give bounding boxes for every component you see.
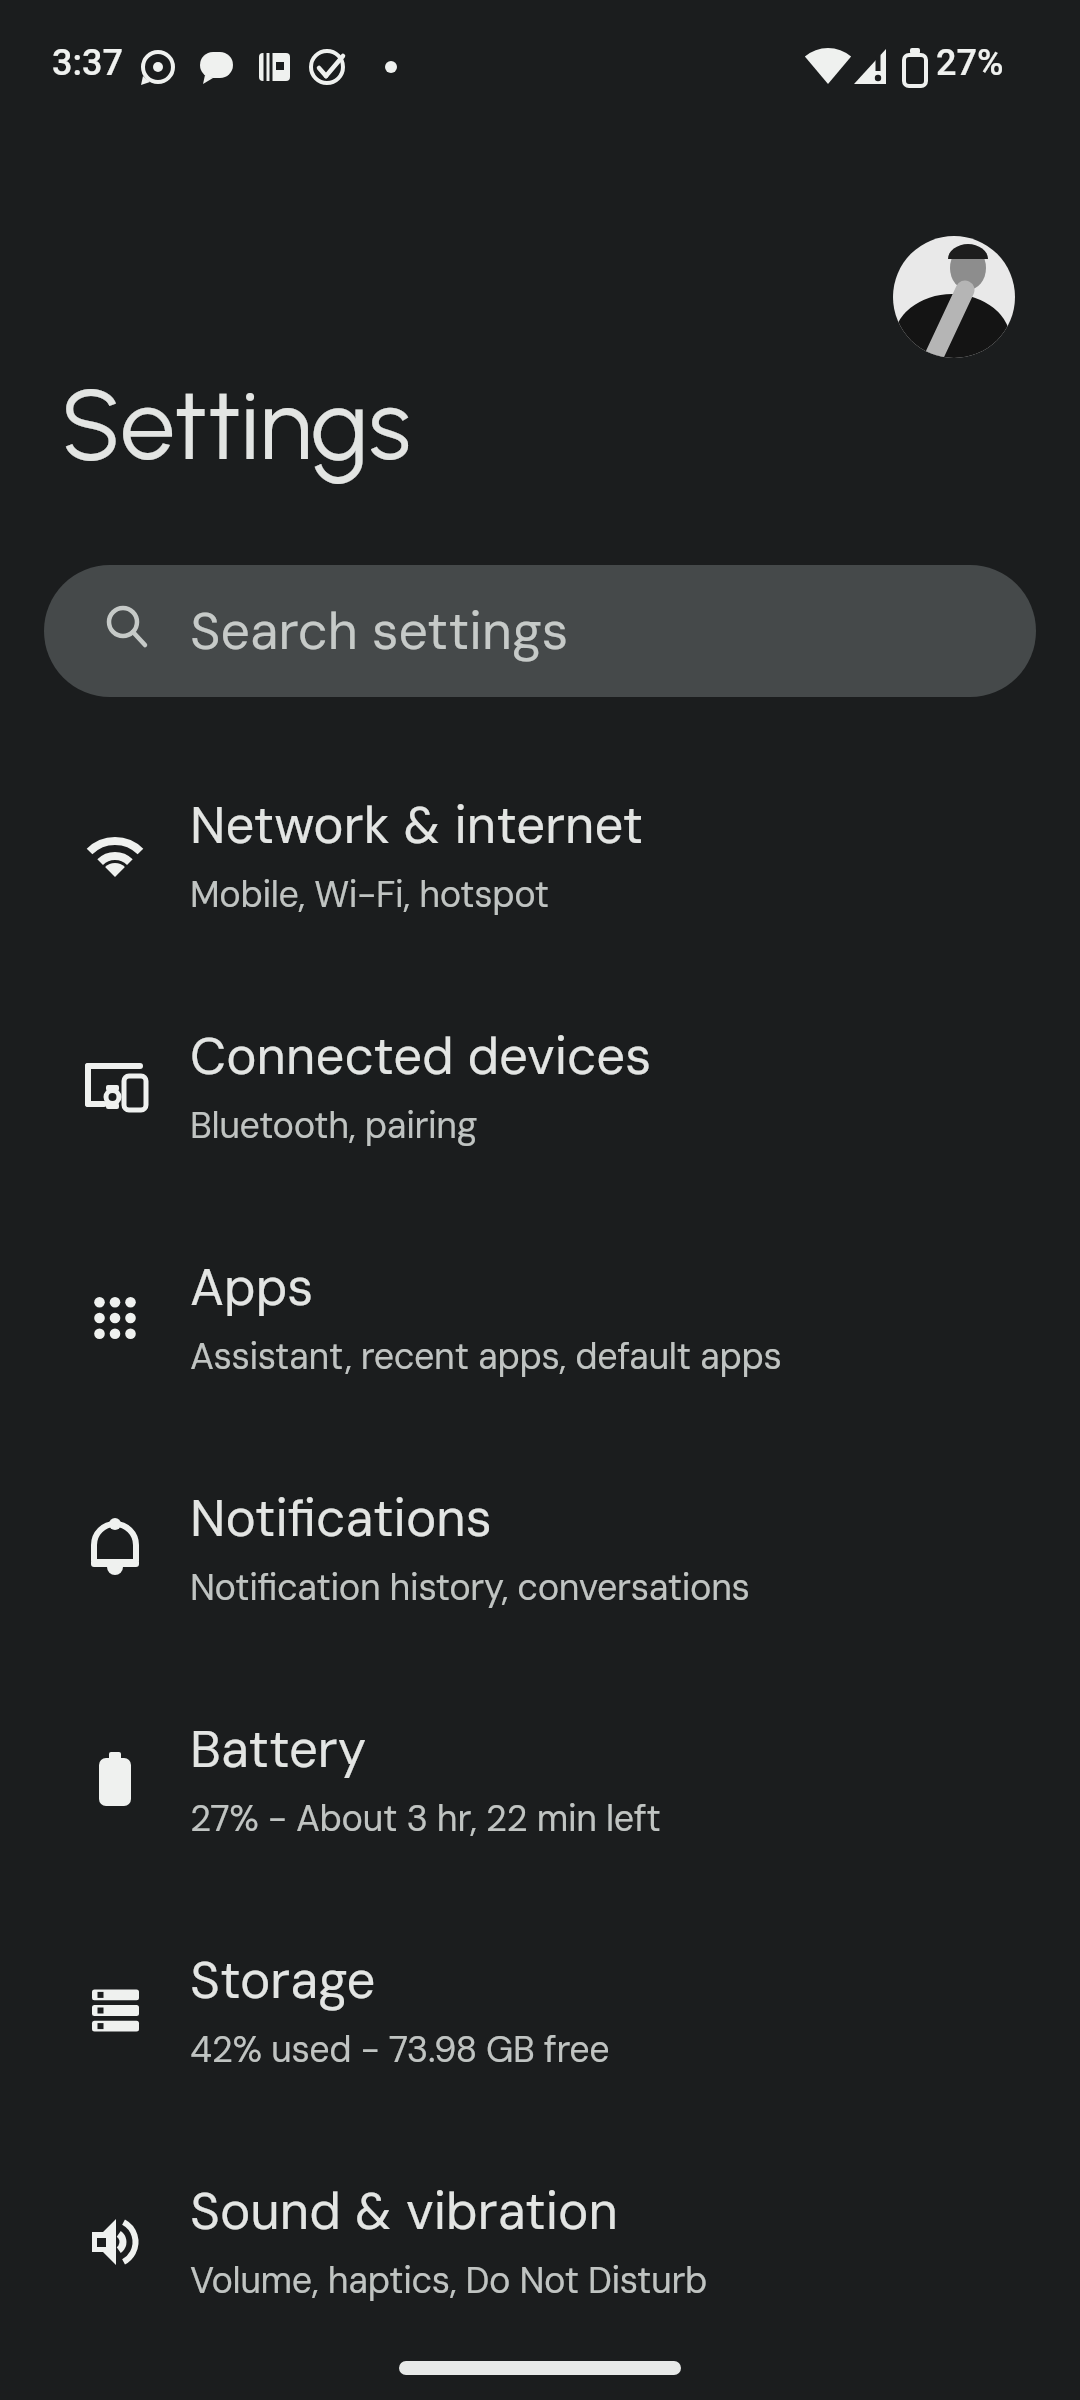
staticText: Notifications — [190, 1485, 492, 1551]
staticText: Assistant, recent apps, default apps — [190, 1333, 782, 1380]
button[interactable] — [893, 236, 1015, 358]
staticText: 3:37 — [52, 42, 123, 84]
staticText: Volume, haptics, Do Not Disturb — [190, 2257, 708, 2304]
button[interactable]: Battery — [0, 1664, 1080, 1895]
staticText: Bluetooth, pairing — [190, 1102, 478, 1149]
staticText: 42% used - 73.98 GB free — [190, 2026, 610, 2073]
button[interactable]: Search settings — [44, 565, 1036, 697]
button[interactable]: Network & internet — [0, 740, 1080, 971]
button[interactable]: Sound & vibration — [0, 2126, 1080, 2357]
staticText: Settings — [61, 366, 411, 484]
staticText: Connected devices — [190, 1023, 652, 1089]
staticText: 27% - About 3 hr, 22 min left — [190, 1795, 661, 1842]
button[interactable]: Connected devices — [0, 971, 1080, 1202]
staticText: Storage — [190, 1947, 376, 2013]
button[interactable]: Notifications — [0, 1433, 1080, 1664]
staticText: Battery — [190, 1716, 367, 1782]
staticText: Network & internet — [190, 792, 644, 858]
button[interactable]: Storage — [0, 1895, 1080, 2126]
button[interactable]: Apps — [0, 1202, 1080, 1433]
staticText: Apps — [190, 1254, 314, 1320]
staticText: Sound & vibration — [190, 2178, 618, 2244]
staticText: Notification history, conversations — [190, 1564, 750, 1611]
staticText: Search settings — [190, 597, 569, 665]
staticText: Mobile, Wi-Fi, hotspot — [190, 871, 549, 918]
staticText: 27% — [936, 42, 1004, 84]
